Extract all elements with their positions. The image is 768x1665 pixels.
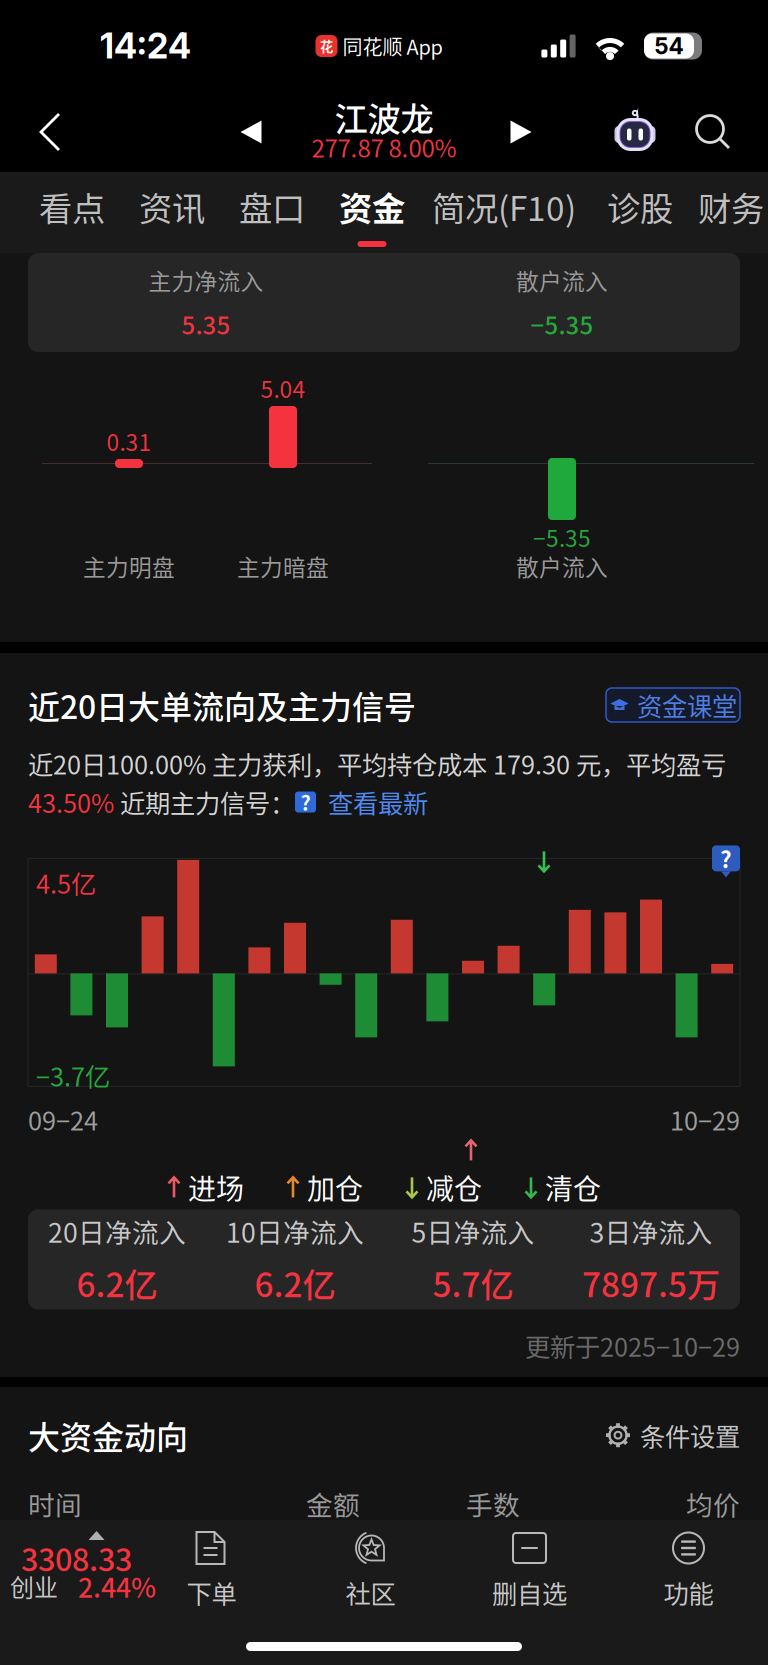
staticText: 5.04 bbox=[260, 372, 305, 404]
button[interactable]: 资讯 bbox=[122, 172, 222, 253]
staticText: 20日净流入 bbox=[48, 1212, 186, 1250]
staticText: 花 bbox=[320, 36, 333, 56]
staticText: 江波龙 bbox=[334, 93, 433, 141]
staticText: 下单 bbox=[186, 1574, 236, 1611]
staticText: ? bbox=[720, 842, 732, 875]
staticText: 简况(F10) bbox=[432, 182, 576, 231]
staticText: 时间 bbox=[28, 1484, 82, 1523]
button[interactable]: 简况(F10) bbox=[422, 172, 586, 253]
staticText: 14:24 bbox=[100, 25, 191, 67]
button[interactable]: Search bbox=[686, 92, 740, 172]
button[interactable]: 删自选 bbox=[450, 1520, 609, 1665]
staticText: 诊股 bbox=[607, 182, 673, 231]
staticText: 近20日100.00% 主力获利，平均持仓成本 179.30 元，平均盈亏 bbox=[28, 745, 726, 782]
staticText: 4.5亿 bbox=[36, 864, 96, 901]
staticText: ? bbox=[300, 787, 310, 816]
staticText: 主力暗盘 bbox=[237, 550, 329, 582]
staticText: 3308.33 bbox=[21, 1536, 132, 1580]
staticText: 43.50% bbox=[28, 784, 114, 820]
staticText: 查看最新 bbox=[316, 784, 428, 820]
button[interactable]: 条件设置 bbox=[605, 1417, 740, 1454]
button[interactable]: Back bbox=[14, 92, 86, 172]
staticText: 加仓 bbox=[307, 1167, 363, 1208]
staticText: 主力明盘 bbox=[83, 550, 175, 582]
button[interactable]: Next stock bbox=[481, 92, 561, 172]
staticText: 资金 bbox=[339, 182, 405, 231]
staticText: 2.44% bbox=[78, 1567, 156, 1605]
staticText: 5.7亿 bbox=[432, 1258, 513, 1307]
button[interactable]: 资金课堂 bbox=[606, 688, 740, 722]
staticText: 进场 bbox=[188, 1167, 244, 1208]
staticText: 6.2亿 bbox=[76, 1258, 157, 1307]
staticText: 功能 bbox=[663, 1574, 713, 1611]
staticText: 减仓 bbox=[426, 1167, 482, 1208]
staticText: 5日净流入 bbox=[411, 1212, 534, 1250]
staticText: 7897.5万 bbox=[582, 1258, 720, 1307]
staticText: 大资金动向 bbox=[28, 1412, 188, 1458]
staticText: 近期主力信号： bbox=[114, 784, 295, 820]
button[interactable]: 资金 bbox=[322, 172, 422, 253]
staticText: −5.35 bbox=[530, 306, 593, 341]
staticText: 手数 bbox=[466, 1484, 520, 1523]
staticText: 09−24 bbox=[28, 1101, 98, 1138]
staticText: 资金课堂 bbox=[637, 687, 737, 723]
staticText: 近20日大单流向及主力信号 bbox=[28, 682, 416, 728]
staticText: 更新于2025−10−29 bbox=[525, 1327, 740, 1364]
staticText: 社区 bbox=[345, 1574, 395, 1611]
staticText: −5.35 bbox=[533, 521, 591, 553]
staticText: 散户流入 bbox=[516, 264, 608, 296]
staticText: 散户流入 bbox=[516, 550, 608, 582]
button[interactable]: 看点 bbox=[22, 172, 122, 253]
button[interactable]: 财务 bbox=[694, 172, 768, 253]
staticText: 5.35 bbox=[181, 306, 230, 341]
staticText: 创业 bbox=[10, 1569, 58, 1603]
staticText: 财务 bbox=[698, 182, 764, 231]
staticText: 条件设置 bbox=[640, 1417, 740, 1454]
staticText: 6.2亿 bbox=[254, 1258, 335, 1307]
button[interactable]: 诊股 bbox=[586, 172, 694, 253]
button[interactable]: Previous stock bbox=[211, 92, 291, 172]
button[interactable]: 功能 bbox=[609, 1520, 768, 1665]
staticText: 盘口 bbox=[239, 182, 305, 231]
button[interactable]: 3308.33 bbox=[0, 1520, 160, 1665]
staticText: 删自选 bbox=[492, 1574, 567, 1611]
staticText: 10−29 bbox=[670, 1101, 740, 1138]
staticText: 资讯 bbox=[139, 182, 205, 231]
staticText: −3.7亿 bbox=[36, 1057, 110, 1094]
staticText: 看点 bbox=[39, 182, 105, 231]
button[interactable]: AI assistant bbox=[606, 92, 664, 172]
staticText: 0.31 bbox=[106, 425, 151, 457]
staticText: 54 bbox=[654, 32, 683, 60]
button[interactable]: Help bbox=[712, 845, 740, 877]
staticText: 均价 bbox=[686, 1484, 740, 1523]
staticText: 3日净流入 bbox=[589, 1212, 712, 1250]
staticText: 清仓 bbox=[545, 1167, 601, 1208]
staticText: 同花顺 App bbox=[342, 31, 442, 60]
button[interactable]: 下单 bbox=[132, 1520, 291, 1665]
staticText: 277.87 8.00% bbox=[311, 130, 456, 164]
staticText: 金额 bbox=[306, 1484, 360, 1523]
staticText: 主力净流入 bbox=[148, 264, 263, 296]
button[interactable]: 社区 bbox=[291, 1520, 450, 1665]
staticText: 10日净流入 bbox=[226, 1212, 364, 1250]
button[interactable]: 盘口 bbox=[222, 172, 322, 253]
